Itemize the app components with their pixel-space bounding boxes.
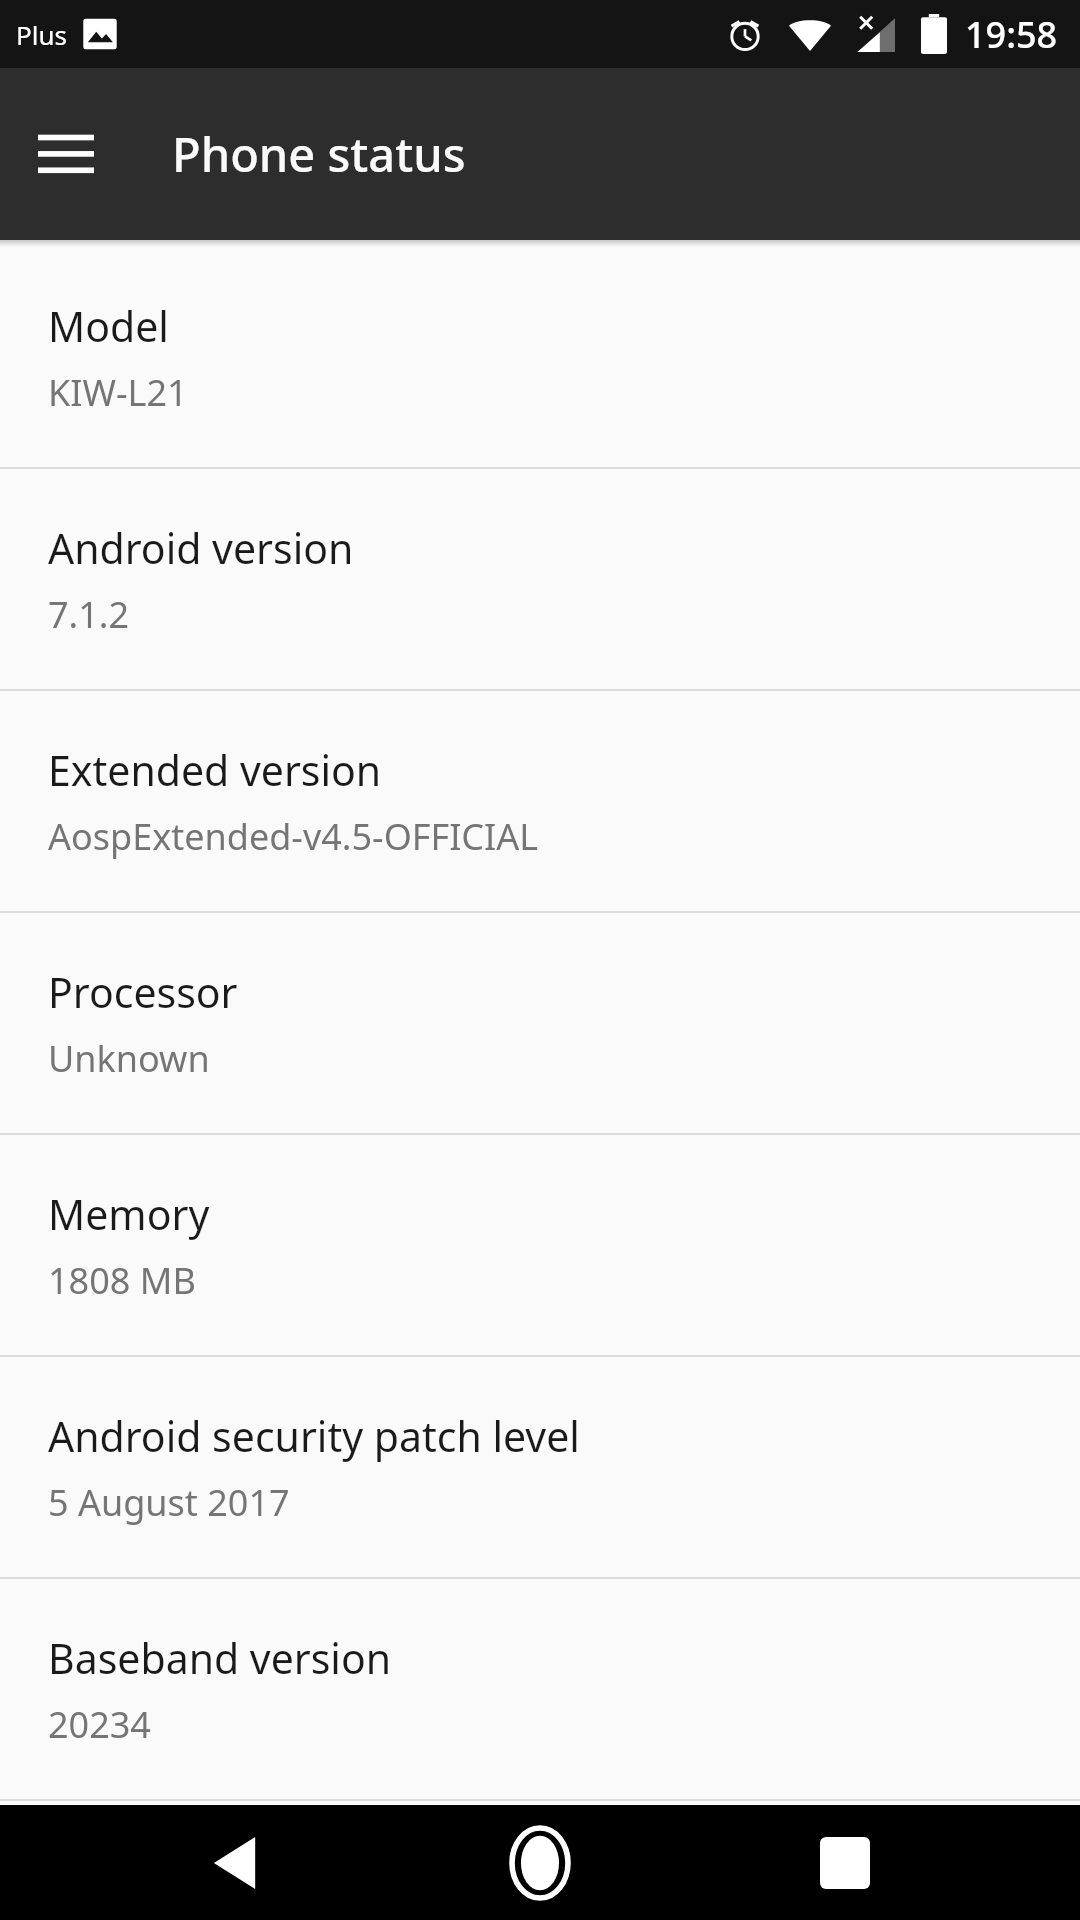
staticText: 1808 MB — [48, 1256, 196, 1305]
staticText: Model — [48, 298, 169, 354]
staticText: Android version — [48, 520, 354, 576]
staticText: Android security patch level — [48, 1408, 580, 1464]
staticText: AospExtended-v4.5-OFFICIAL — [48, 812, 539, 861]
button[interactable]: Processor — [0, 913, 1080, 1133]
button[interactable]: Android security patch level — [0, 1357, 1080, 1577]
button[interactable]: Android version — [0, 469, 1080, 689]
staticText: Processor — [48, 964, 238, 1020]
button[interactable]: Home — [470, 1805, 610, 1920]
button[interactable]: Memory — [0, 1135, 1080, 1355]
staticText: Unknown — [48, 1034, 210, 1083]
staticText: 20234 — [48, 1700, 151, 1749]
staticText: KIW-L21 — [48, 368, 188, 417]
button[interactable]: Model — [0, 247, 1080, 467]
staticText: Plus — [16, 17, 67, 52]
button[interactable]: Recent apps — [775, 1805, 915, 1920]
button[interactable]: Baseband version — [0, 1579, 1080, 1799]
button[interactable]: Back — [165, 1805, 305, 1920]
staticText: 5 August 2017 — [48, 1478, 290, 1527]
staticText: 7.1.2 — [48, 590, 130, 639]
staticText: Extended version — [48, 742, 382, 798]
staticText: Memory — [48, 1186, 210, 1242]
staticText: Baseband version — [48, 1630, 392, 1686]
staticText: Phone status — [172, 122, 466, 186]
button[interactable]: Extended version — [0, 691, 1080, 911]
staticText: 19:58 — [965, 10, 1058, 59]
button[interactable]: Open navigation menu — [24, 112, 108, 196]
